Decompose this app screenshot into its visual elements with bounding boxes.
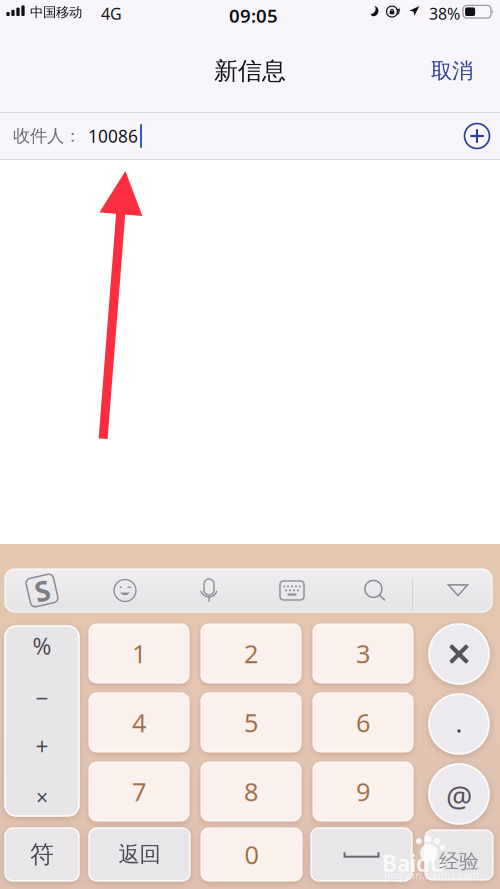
- button[interactable]: 4: [89, 693, 189, 752]
- button[interactable]: 返回: [89, 828, 190, 881]
- staticText: 38%: [429, 3, 460, 24]
- button[interactable]: Delete: [429, 624, 489, 684]
- staticText: +: [35, 731, 48, 761]
- staticText: 7: [132, 775, 146, 808]
- staticText: [456, 841, 462, 869]
- staticText: %: [32, 631, 51, 661]
- staticText: 10086: [88, 124, 138, 147]
- button[interactable]: 2: [201, 624, 301, 683]
- staticText: Baidu: [382, 848, 444, 878]
- staticText: 1: [132, 637, 146, 670]
- staticText: 新信息: [214, 56, 286, 86]
- staticText: 8: [244, 775, 258, 808]
- staticText: 3: [356, 637, 370, 670]
- staticText: 6: [356, 706, 370, 739]
- button[interactable]: Symbols: [5, 626, 79, 816]
- button[interactable]: 7: [89, 762, 189, 821]
- staticText: @: [446, 776, 472, 815]
- button[interactable]: 5: [201, 693, 301, 752]
- staticText: 2: [244, 637, 258, 670]
- staticText: ×: [36, 783, 48, 811]
- button[interactable]: At sign: [429, 764, 489, 824]
- staticText: 4: [132, 706, 146, 739]
- button[interactable]: Emoji: [89, 569, 161, 612]
- staticText: jingyan.baidu.com: [384, 868, 479, 882]
- staticText: 4G: [101, 3, 122, 24]
- staticText: −: [35, 683, 48, 713]
- button[interactable]: 3: [313, 624, 413, 683]
- staticText: S: [34, 572, 49, 609]
- button[interactable]: 换行: [425, 830, 493, 880]
- button[interactable]: Period: [429, 694, 489, 754]
- button[interactable]: 空格: [311, 828, 412, 881]
- button[interactable]: 符: [5, 828, 79, 881]
- button[interactable]: Hide keyboard: [422, 569, 494, 612]
- staticText: 0: [244, 838, 258, 871]
- staticText: 取消: [431, 58, 473, 84]
- staticText: 09:05: [229, 3, 278, 28]
- staticText: 返回: [118, 841, 160, 868]
- staticText: 经验: [439, 849, 479, 874]
- button[interactable]: Sogou input method: [6, 569, 78, 612]
- button[interactable]: Voice input: [173, 569, 245, 612]
- button[interactable]: 1: [89, 624, 189, 683]
- button[interactable]: Search: [339, 569, 411, 612]
- staticText: 5: [244, 706, 258, 739]
- button[interactable]: 0: [201, 828, 302, 881]
- staticText: 符: [30, 840, 54, 869]
- staticText: 收件人：: [13, 125, 81, 147]
- button[interactable]: Keyboard layouts: [256, 569, 328, 612]
- button[interactable]: Add recipient: [463, 122, 491, 150]
- button[interactable]: 8: [201, 762, 301, 821]
- button[interactable]: 6: [313, 693, 413, 752]
- button[interactable]: 9: [313, 762, 413, 821]
- staticText: 9: [356, 775, 370, 808]
- staticText: 中国移动: [30, 4, 82, 20]
- button[interactable]: 取消: [419, 50, 485, 92]
